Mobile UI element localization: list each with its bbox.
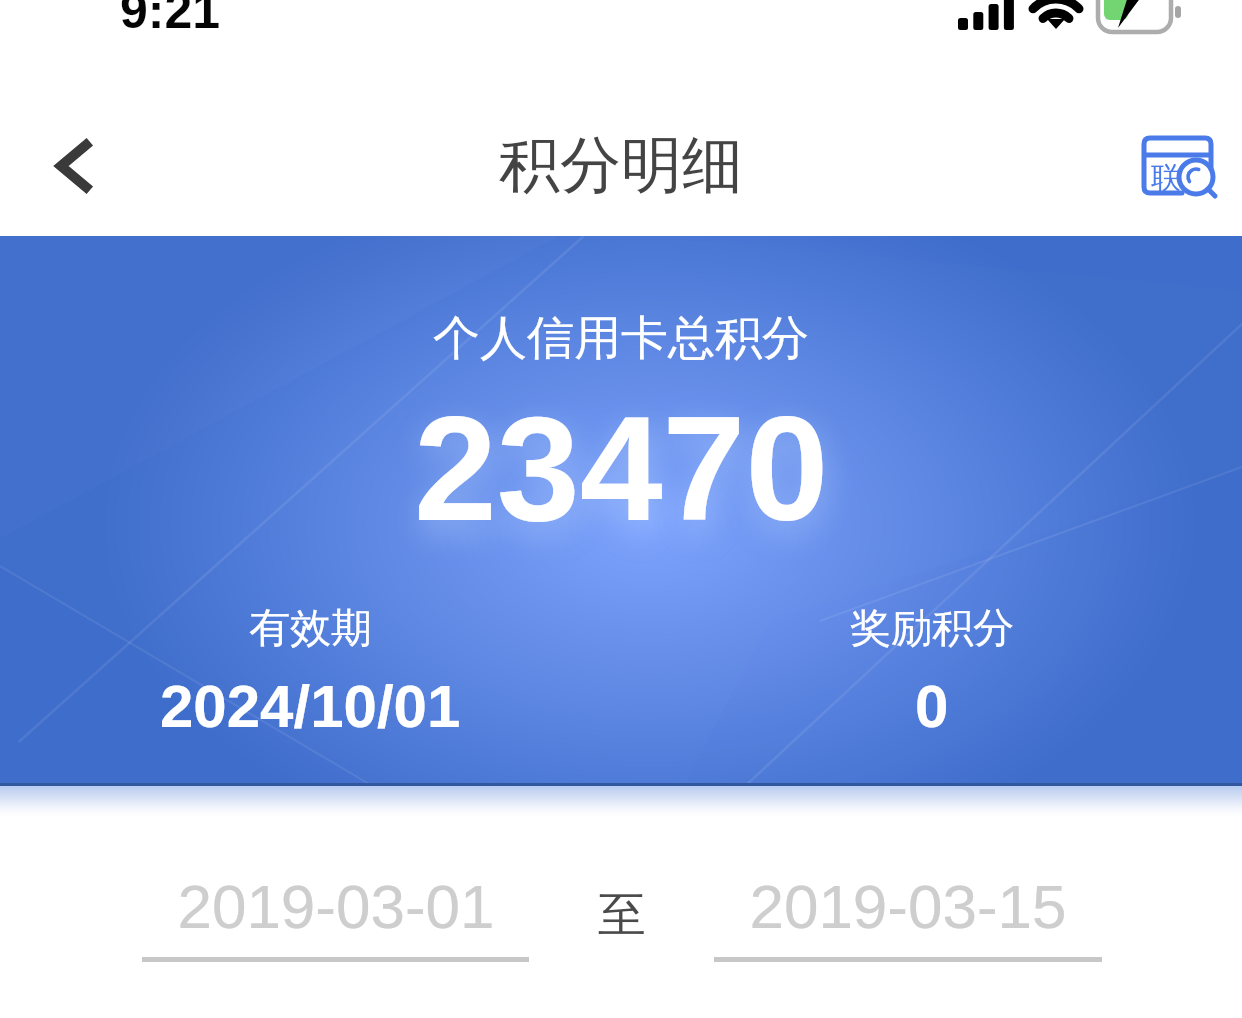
staticText: 2019-03-01 xyxy=(177,872,495,941)
staticText: 积分明细 xyxy=(499,127,743,204)
button[interactable]: Search card transactions xyxy=(1116,107,1242,227)
staticText: 联 xyxy=(1151,159,1181,197)
staticText: 0 xyxy=(915,673,949,740)
staticText: 奖励积分 xyxy=(850,603,1014,655)
staticText: 个人信用卡总积分 xyxy=(433,309,809,368)
button[interactable]: 2019-03-15 xyxy=(714,872,1102,962)
button[interactable]: 2019-03-01 xyxy=(142,872,529,962)
button[interactable]: Back xyxy=(13,106,133,226)
staticText: 至 xyxy=(598,885,646,945)
staticText: 有效期 xyxy=(249,603,372,655)
staticText: 2019-03-15 xyxy=(749,872,1067,941)
staticText: 2024/10/01 xyxy=(160,673,461,740)
staticText: 23470 xyxy=(414,385,829,551)
staticText: 9:21 xyxy=(120,0,221,39)
